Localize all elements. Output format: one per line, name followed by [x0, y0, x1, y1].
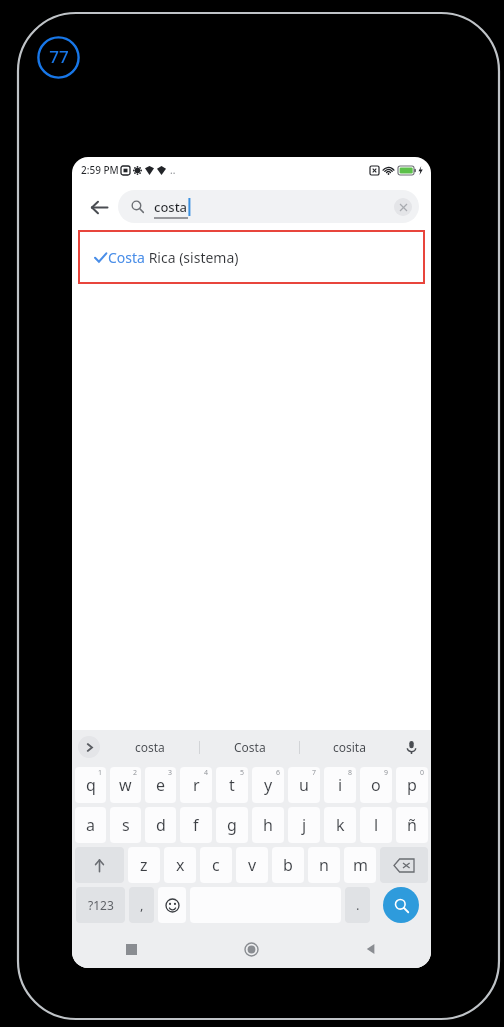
button[interactable]: x: [164, 847, 196, 883]
button[interactable]: Shift: [75, 847, 124, 883]
staticText: ñ: [407, 814, 417, 836]
staticText: f: [193, 814, 199, 836]
staticText: t: [229, 774, 235, 796]
button[interactable]: o: [360, 767, 392, 803]
button[interactable]: f: [180, 807, 212, 843]
button[interactable]: m: [344, 847, 376, 883]
staticText: d: [156, 814, 166, 836]
staticText: g: [227, 814, 237, 836]
button[interactable]: Recents: [72, 930, 191, 968]
staticText: q: [86, 774, 96, 796]
staticText: w: [119, 774, 132, 796]
button[interactable]: ?123: [76, 887, 125, 923]
staticText: p: [407, 774, 417, 796]
staticText: 1: [98, 768, 103, 778]
button[interactable]: Back: [80, 188, 118, 226]
staticText: 7: [312, 768, 317, 778]
staticText: l: [374, 814, 379, 836]
button[interactable]: k: [324, 807, 356, 843]
staticText: 6: [276, 768, 281, 778]
staticText: y: [264, 774, 273, 796]
button[interactable]: w: [110, 767, 141, 803]
button[interactable]: ñ: [396, 807, 428, 843]
button[interactable]: Emoji: [158, 887, 186, 923]
button[interactable]: Home: [191, 930, 311, 968]
staticText: x: [176, 854, 185, 876]
staticText: 0: [420, 768, 425, 778]
staticText: j: [302, 814, 307, 836]
staticText: h: [263, 814, 273, 836]
staticText: v: [248, 854, 257, 876]
staticText: 8: [348, 768, 353, 778]
staticText: a: [86, 814, 95, 836]
staticText: costa: [135, 739, 165, 755]
button[interactable]: v: [236, 847, 268, 883]
staticText: 5: [240, 768, 245, 778]
button[interactable]: .: [345, 887, 370, 923]
button[interactable]: costa: [118, 190, 419, 223]
staticText: o: [371, 774, 381, 796]
staticText: c: [212, 854, 220, 876]
button[interactable]: j: [288, 807, 320, 843]
button[interactable]: Costa: [78, 230, 425, 284]
staticText: k: [336, 814, 345, 836]
button[interactable]: a: [75, 807, 106, 843]
button[interactable]: c: [200, 847, 232, 883]
button[interactable]: i: [324, 767, 356, 803]
button[interactable]: Search: [383, 887, 419, 923]
button[interactable]: costa: [100, 730, 199, 764]
staticText: costa: [154, 198, 188, 216]
button[interactable]: b: [272, 847, 304, 883]
button[interactable]: e: [145, 767, 176, 803]
staticText: 4: [204, 768, 209, 778]
staticText: b: [283, 854, 293, 876]
button[interactable]: g: [216, 807, 248, 843]
button[interactable]: n: [308, 847, 340, 883]
staticText: Rica (sistema): [145, 248, 239, 267]
button[interactable]: z: [128, 847, 160, 883]
staticText: .: [356, 896, 360, 914]
staticText: cosita: [333, 739, 366, 755]
button[interactable]: y: [252, 767, 284, 803]
button[interactable]: cosita: [300, 730, 399, 764]
staticText: z: [140, 854, 148, 876]
button[interactable]: Voice input: [399, 735, 423, 759]
staticText: Costa: [108, 248, 145, 267]
button[interactable]: d: [145, 807, 176, 843]
button[interactable]: t: [216, 767, 248, 803]
staticText: ..: [170, 163, 176, 177]
staticText: n: [319, 854, 329, 876]
button[interactable]: q: [75, 767, 106, 803]
button[interactable]: p: [396, 767, 428, 803]
button[interactable]: r: [180, 767, 212, 803]
button[interactable]: More suggestions: [78, 736, 100, 758]
staticText: 3: [168, 768, 173, 778]
staticText: Costa: [234, 739, 266, 755]
button[interactable]: h: [252, 807, 284, 843]
staticText: 2:59 PM: [81, 163, 119, 177]
staticText: r: [193, 774, 200, 796]
staticText: ,: [140, 896, 144, 914]
button[interactable]: Costa: [200, 730, 299, 764]
staticText: 2: [133, 768, 138, 778]
staticText: m: [353, 854, 368, 876]
staticText: s: [122, 814, 130, 836]
button[interactable]: s: [110, 807, 141, 843]
staticText: ?123: [88, 897, 114, 913]
staticText: 77: [49, 45, 69, 68]
button[interactable]: Backspace: [380, 847, 428, 883]
staticText: u: [299, 774, 309, 796]
button[interactable]: Back: [311, 930, 431, 968]
button[interactable]: Clear: [394, 198, 412, 216]
staticText: i: [338, 774, 343, 796]
button[interactable]: ,: [129, 887, 154, 923]
staticText: e: [156, 774, 166, 796]
button[interactable]: l: [360, 807, 392, 843]
button[interactable]: u: [288, 767, 320, 803]
staticText: 9: [384, 768, 389, 778]
